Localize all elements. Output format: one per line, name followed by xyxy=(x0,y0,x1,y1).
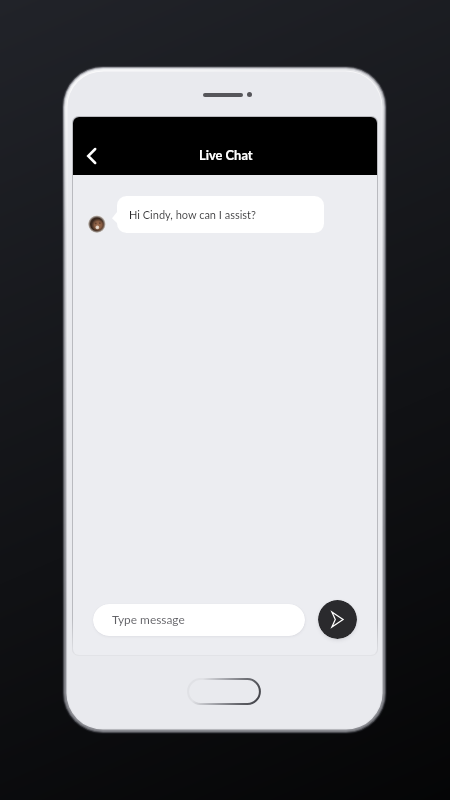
button[interactable]: Type message xyxy=(93,604,305,636)
button[interactable]: Hi Cindy, how can I assist? xyxy=(112,196,324,233)
button[interactable]: Back xyxy=(79,143,104,168)
button[interactable]: Send xyxy=(318,600,357,639)
staticText: Live Chat xyxy=(199,147,253,162)
staticText: Hi Cindy, how can I assist? xyxy=(129,208,256,221)
staticText: Type message xyxy=(112,612,185,626)
